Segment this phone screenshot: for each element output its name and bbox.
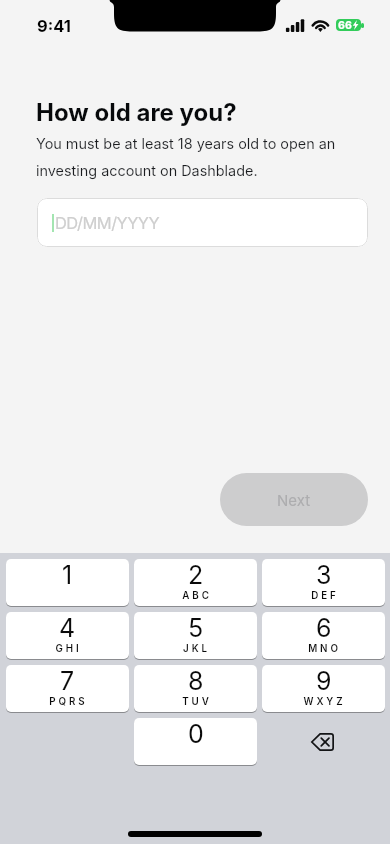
staticText: 5	[188, 613, 204, 643]
staticText: You must be at least 18 years old to ope…	[36, 135, 336, 179]
staticText: 66	[338, 19, 352, 31]
staticText: PQRS	[49, 696, 88, 708]
button[interactable]: 6	[262, 612, 385, 660]
staticText: ABC	[182, 590, 212, 602]
staticText: 7	[60, 666, 75, 696]
button[interactable]: 4	[6, 612, 129, 660]
button[interactable]: 7	[6, 665, 129, 713]
button[interactable]: Next	[220, 473, 368, 526]
button[interactable]: 3	[262, 559, 385, 607]
staticText: GHI	[55, 643, 82, 655]
staticText: MNO	[308, 643, 341, 655]
staticText: 6	[316, 613, 332, 643]
button[interactable]: 1	[6, 559, 129, 607]
button[interactable]: 8	[134, 665, 257, 713]
staticText: 9	[316, 666, 332, 696]
staticText: 1	[62, 560, 73, 590]
button[interactable]: 2	[134, 559, 257, 607]
staticText: 3	[316, 560, 332, 590]
button[interactable]: 9	[262, 665, 385, 713]
staticText: TUV	[182, 696, 212, 708]
staticText: WXYZ	[303, 696, 346, 708]
button[interactable]: 5	[134, 612, 257, 660]
button[interactable]: Delete	[260, 718, 383, 765]
staticText: Next	[277, 491, 311, 509]
staticText: 2	[188, 560, 204, 590]
staticText: JKL	[183, 643, 210, 655]
staticText: DD/MM/YYYY	[55, 213, 160, 233]
staticText: 8	[188, 666, 204, 696]
button[interactable]: 0	[134, 718, 257, 766]
staticText: 0	[188, 719, 204, 749]
staticText: How old are you?	[36, 98, 237, 127]
button[interactable]: DD/MM/YYYY	[37, 198, 368, 247]
staticText: DEF	[311, 590, 339, 602]
staticText: 4	[59, 613, 76, 643]
staticText: 9:41	[37, 16, 71, 36]
